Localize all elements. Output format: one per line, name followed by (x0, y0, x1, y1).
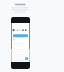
button[interactable]: Profile (12, 28, 17, 34)
button[interactable]: Send (25, 58, 29, 62)
